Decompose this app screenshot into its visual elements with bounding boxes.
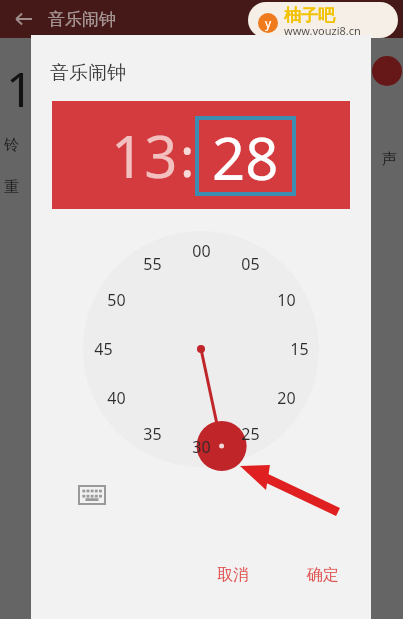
button[interactable]: 25 (233, 417, 267, 451)
staticText: 音乐闹钟 (50, 61, 126, 85)
staticText: 50 (107, 289, 126, 311)
staticText: 45 (94, 338, 113, 360)
button[interactable]: 05 (233, 247, 267, 281)
staticText: 25 (241, 423, 260, 445)
staticText: 1 (6, 56, 34, 121)
button[interactable]: 55 (135, 247, 169, 281)
button[interactable]: 45 (86, 332, 120, 366)
button[interactable]: 10 (269, 283, 303, 317)
staticText: 28 (212, 118, 279, 194)
button[interactable]: 30 (184, 430, 218, 464)
staticText: 声 (382, 150, 397, 169)
staticText: : (180, 119, 195, 193)
staticText: 重 (4, 178, 19, 197)
staticText: 05 (241, 253, 260, 275)
staticText: 音乐闹钟 (48, 9, 116, 30)
button[interactable]: 28 (197, 118, 294, 194)
staticText: 55 (143, 253, 162, 275)
staticText: 取消 (217, 565, 249, 585)
staticText: 15 (290, 338, 309, 360)
staticText: y (265, 15, 272, 31)
button[interactable]: 确定 (289, 555, 357, 595)
button[interactable]: Back (8, 4, 38, 34)
button[interactable]: 13 (109, 116, 180, 195)
staticText: 10 (277, 289, 296, 311)
button[interactable]: 50 (99, 283, 133, 317)
button[interactable]: 20 (269, 381, 303, 415)
button[interactable]: 00 (184, 234, 218, 268)
staticText: 40 (107, 387, 126, 409)
staticText: 柚子吧 (284, 5, 335, 26)
staticText: 35 (143, 423, 162, 445)
staticText: 铃 (4, 136, 19, 155)
staticText: www.youzi8.cn (284, 23, 361, 38)
button[interactable]: 40 (99, 381, 133, 415)
button[interactable]: 35 (135, 417, 169, 451)
staticText: 30 (192, 436, 211, 458)
staticText: 确定 (307, 565, 339, 585)
button[interactable]: 取消 (199, 555, 267, 595)
button[interactable]: 15 (282, 332, 316, 366)
staticText: 13 (111, 116, 178, 195)
staticText: 00 (192, 240, 211, 262)
staticText: 20 (277, 387, 296, 409)
button[interactable]: Switch to keyboard input (75, 482, 109, 508)
button[interactable]: Toggle alarm (372, 56, 402, 86)
